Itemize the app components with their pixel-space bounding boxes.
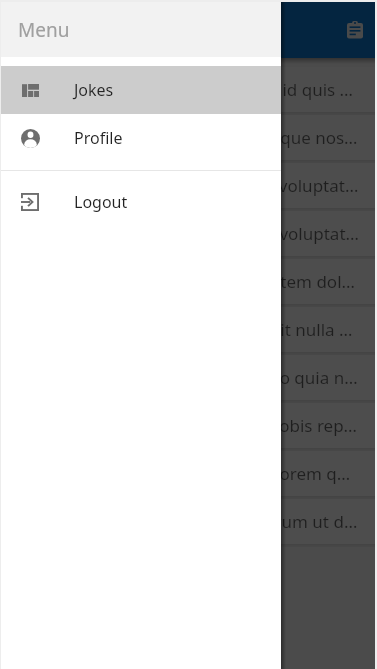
button[interactable]: Profile	[1, 114, 281, 162]
button[interactable]: Voluptatem quia architecto vel atque nos…	[1, 115, 375, 160]
staticText: Dolor magnam minus ut distinctio quia ne…	[17, 366, 359, 389]
button[interactable]: Molestias rerum incidunt quia autem dolo…	[1, 259, 375, 304]
staticText: Quia voluptatibus providentia rerum ut d…	[17, 510, 359, 533]
staticText: Quibusdam aut dolores tempora id quis ev…	[17, 78, 359, 101]
button[interactable]: Logout	[1, 178, 281, 226]
staticText: Sunt dolores qui ut praesentium voluptat…	[17, 174, 359, 197]
staticText: Logout	[74, 191, 128, 213]
button[interactable]: Quibusdam aut dolores tempora id quis ev…	[1, 67, 375, 112]
staticText: Consequatur ea accusantium dolorem qui s…	[17, 462, 359, 485]
button[interactable]: Doloremque quidem aut esse velit nulla c…	[1, 307, 375, 352]
button[interactable]: Dolor magnam minus ut distinctio quia ne…	[1, 355, 375, 400]
staticText: Jokes	[74, 79, 114, 101]
staticText: Molestias rerum incidunt quia autem dolo…	[17, 270, 359, 293]
staticText: Profile	[74, 127, 123, 149]
button[interactable]: Facere quis sed commodi labore voluptate…	[1, 211, 375, 256]
staticText: Quia aliquid harum tempora et nobis repe…	[17, 414, 359, 437]
button[interactable]: Jokes	[1, 66, 281, 114]
button[interactable]: Consequatur ea accusantium dolorem qui s…	[1, 451, 375, 496]
button[interactable]: Quia voluptatibus providentia rerum ut d…	[1, 499, 375, 544]
button[interactable]: Sunt dolores qui ut praesentium voluptat…	[1, 163, 375, 208]
button[interactable]: Quia aliquid harum tempora et nobis repe…	[1, 403, 375, 448]
staticText: Voluptatem quia architecto vel atque nos…	[17, 126, 359, 149]
staticText: Menu	[18, 17, 70, 43]
button[interactable]: Jokes	[335, 10, 375, 50]
staticText: Doloremque quidem aut esse velit nulla c…	[17, 318, 359, 341]
staticText: Facere quis sed commodi labore voluptate…	[17, 222, 359, 245]
